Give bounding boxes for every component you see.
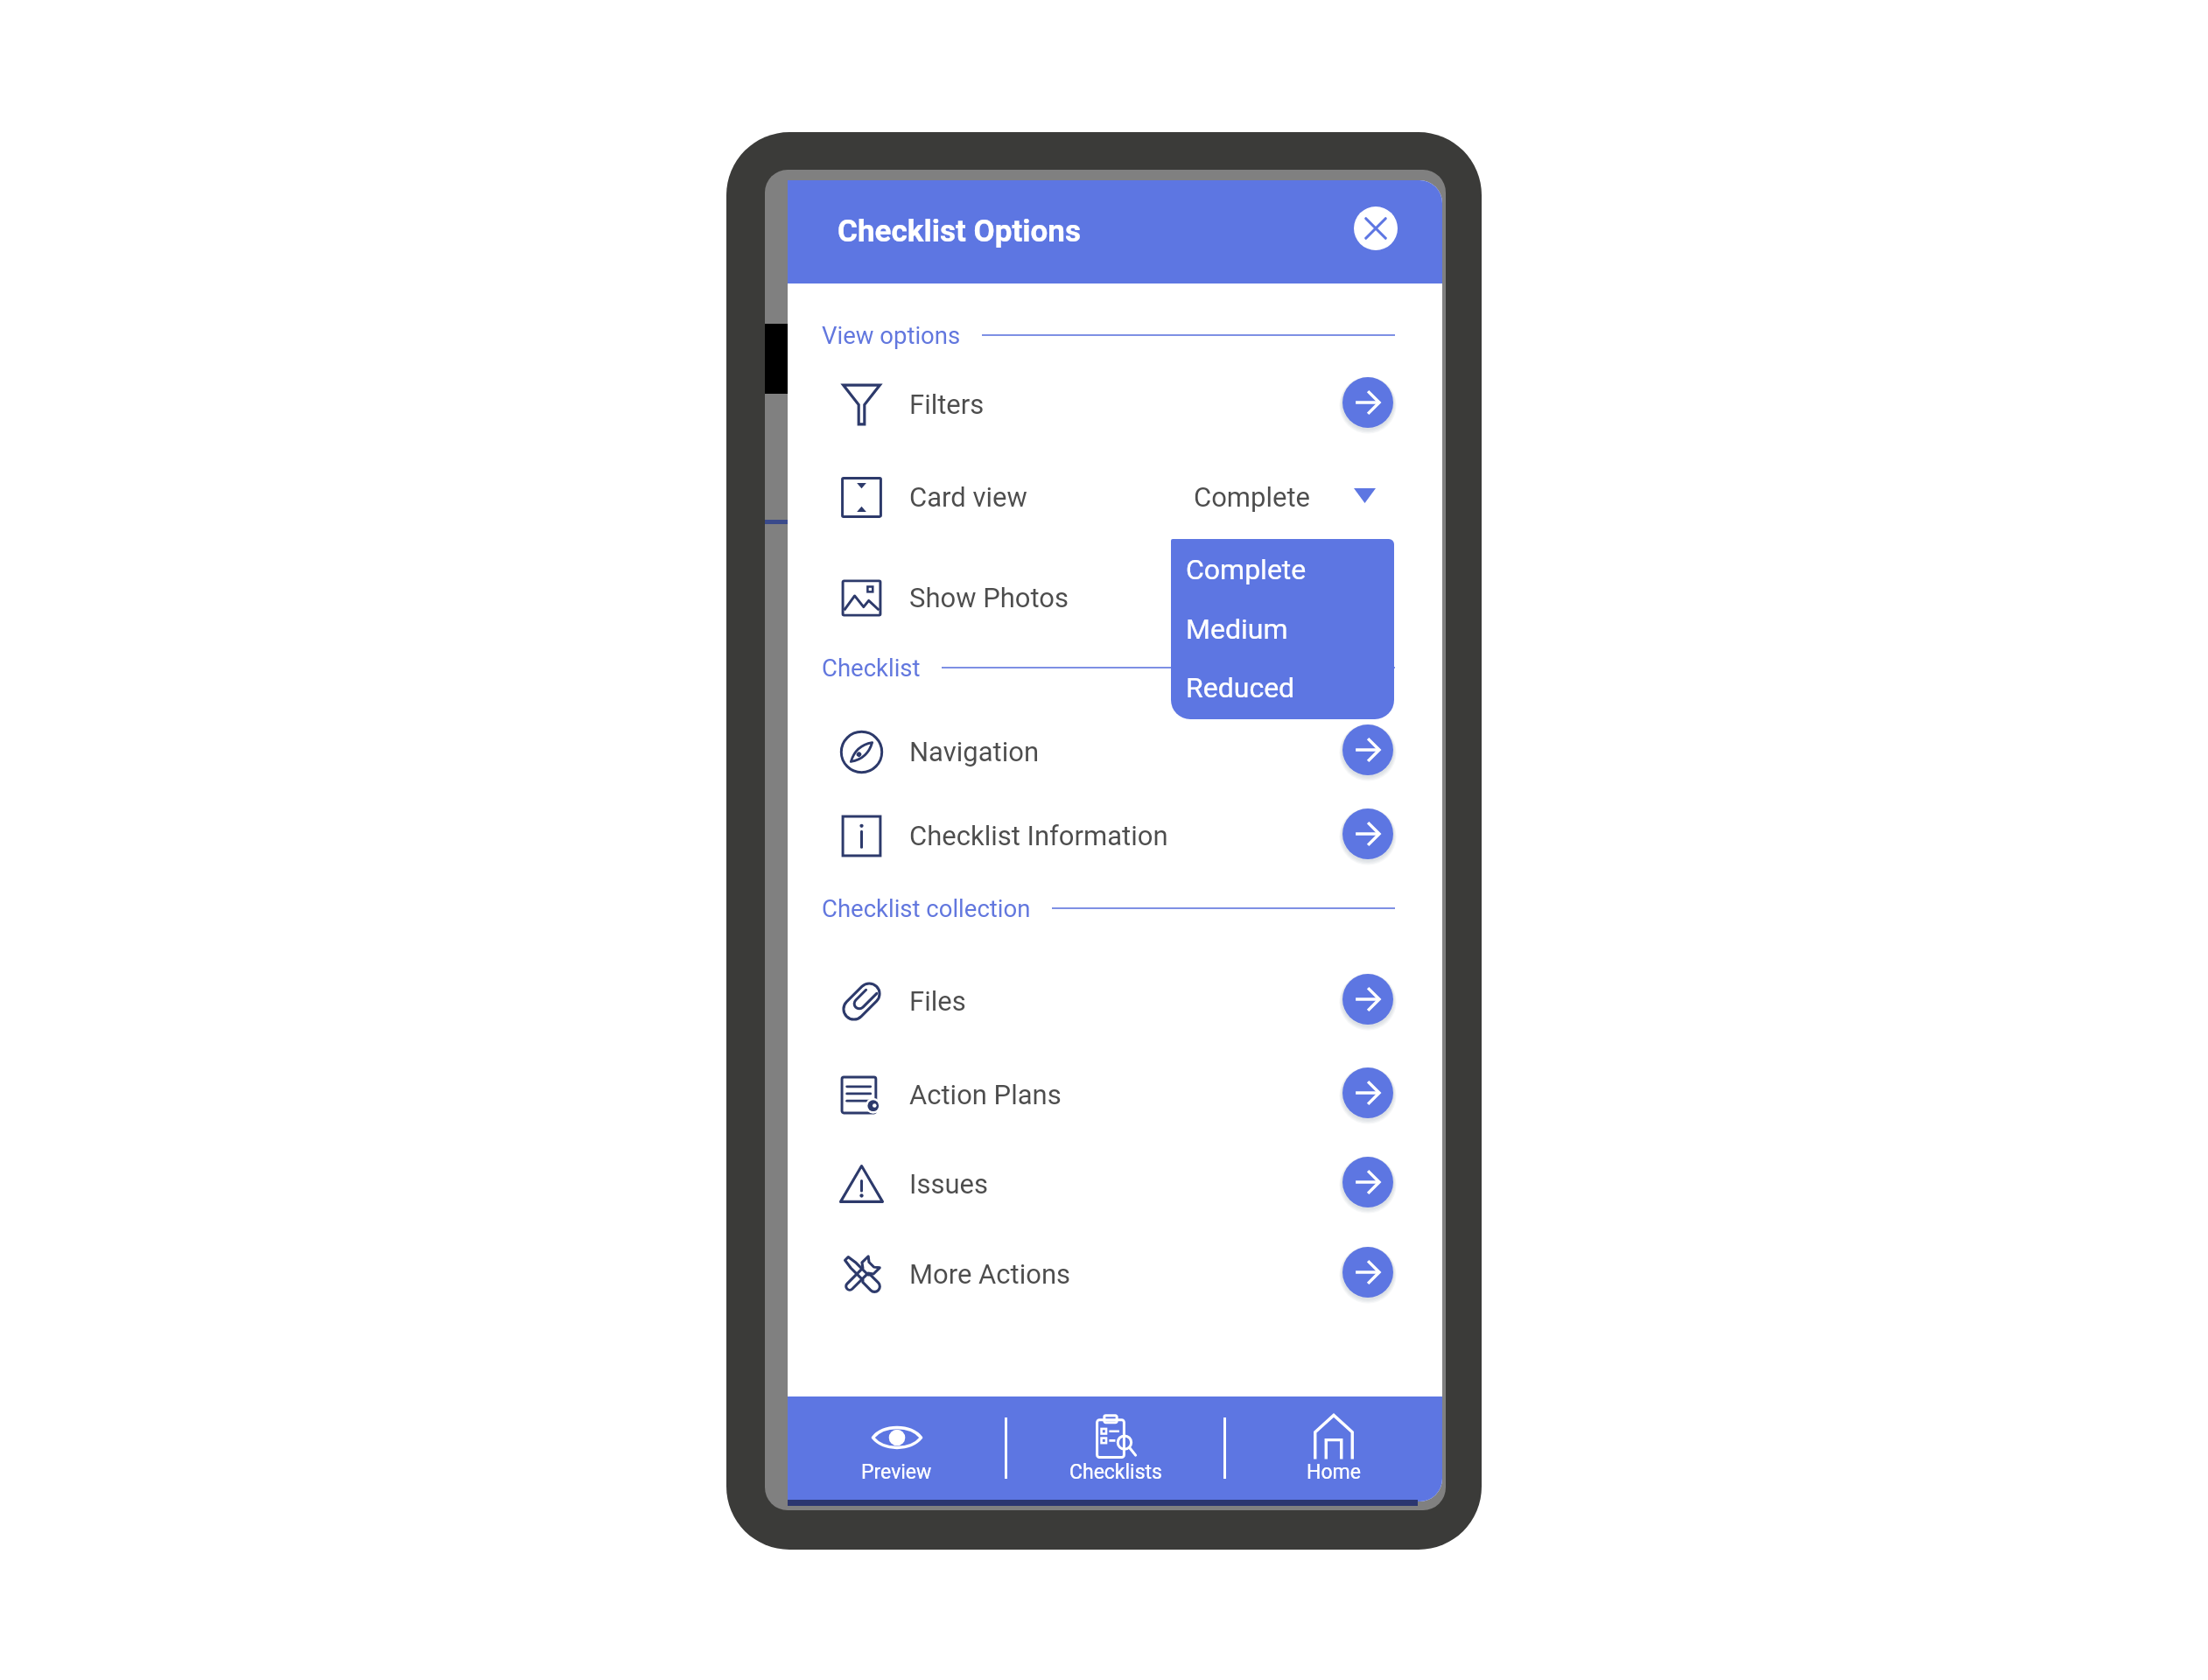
staticText: Checklist Options bbox=[838, 213, 1081, 249]
staticText: Preview bbox=[861, 1460, 932, 1484]
button[interactable]: Issues bbox=[788, 1139, 1442, 1228]
staticText: Action Plans bbox=[909, 1079, 1062, 1110]
button[interactable]: Preview bbox=[788, 1396, 1006, 1501]
staticText: Files bbox=[909, 985, 966, 1017]
button[interactable]: Open Files bbox=[1339, 970, 1397, 1028]
button[interactable]: Files bbox=[788, 956, 1442, 1046]
button[interactable]: Open Issues bbox=[1339, 1153, 1397, 1211]
staticText: Checklist collection bbox=[822, 894, 1031, 922]
staticText: Complete bbox=[1186, 553, 1307, 586]
button[interactable]: Card view bbox=[788, 452, 1442, 542]
button[interactable]: Action Plans bbox=[788, 1050, 1442, 1139]
staticText: Filters bbox=[909, 388, 985, 420]
button[interactable]: More Actions bbox=[788, 1229, 1442, 1319]
button[interactable]: Close bbox=[1354, 206, 1398, 250]
button[interactable]: Complete bbox=[1171, 543, 1394, 596]
staticText: Show Photos bbox=[909, 582, 1069, 613]
button[interactable]: Open More Actions bbox=[1339, 1243, 1397, 1301]
staticText: Medium bbox=[1186, 612, 1288, 646]
staticText: Checklist Information bbox=[909, 820, 1168, 851]
staticText: More Actions bbox=[909, 1258, 1071, 1290]
button[interactable]: Filters bbox=[788, 360, 1442, 449]
button[interactable]: Checklists bbox=[1006, 1396, 1224, 1501]
button[interactable]: Open Navigation bbox=[1339, 721, 1397, 779]
staticText: Issues bbox=[909, 1168, 988, 1200]
staticText: Home bbox=[1307, 1460, 1361, 1484]
staticText: Complete bbox=[1194, 481, 1311, 513]
button[interactable]: Navigation bbox=[788, 707, 1442, 796]
button[interactable]: Show Photos bbox=[788, 553, 1442, 642]
staticText: Checklists bbox=[1069, 1460, 1162, 1484]
button[interactable]: Reduced bbox=[1171, 661, 1394, 714]
button[interactable]: Open Checklist Information bbox=[1339, 805, 1397, 863]
button[interactable]: Open Action Plans bbox=[1339, 1064, 1397, 1122]
button[interactable]: Complete bbox=[1181, 470, 1384, 524]
button[interactable]: Checklist Information bbox=[788, 791, 1442, 880]
button[interactable]: Home bbox=[1224, 1396, 1442, 1501]
staticText: Navigation bbox=[909, 736, 1040, 767]
button[interactable]: Medium bbox=[1171, 603, 1394, 655]
button[interactable]: Open Filters bbox=[1339, 374, 1397, 431]
staticText: View options bbox=[822, 321, 961, 349]
staticText: Checklist bbox=[822, 654, 921, 682]
staticText: Reduced bbox=[1186, 671, 1295, 704]
staticText: Card view bbox=[909, 481, 1027, 513]
